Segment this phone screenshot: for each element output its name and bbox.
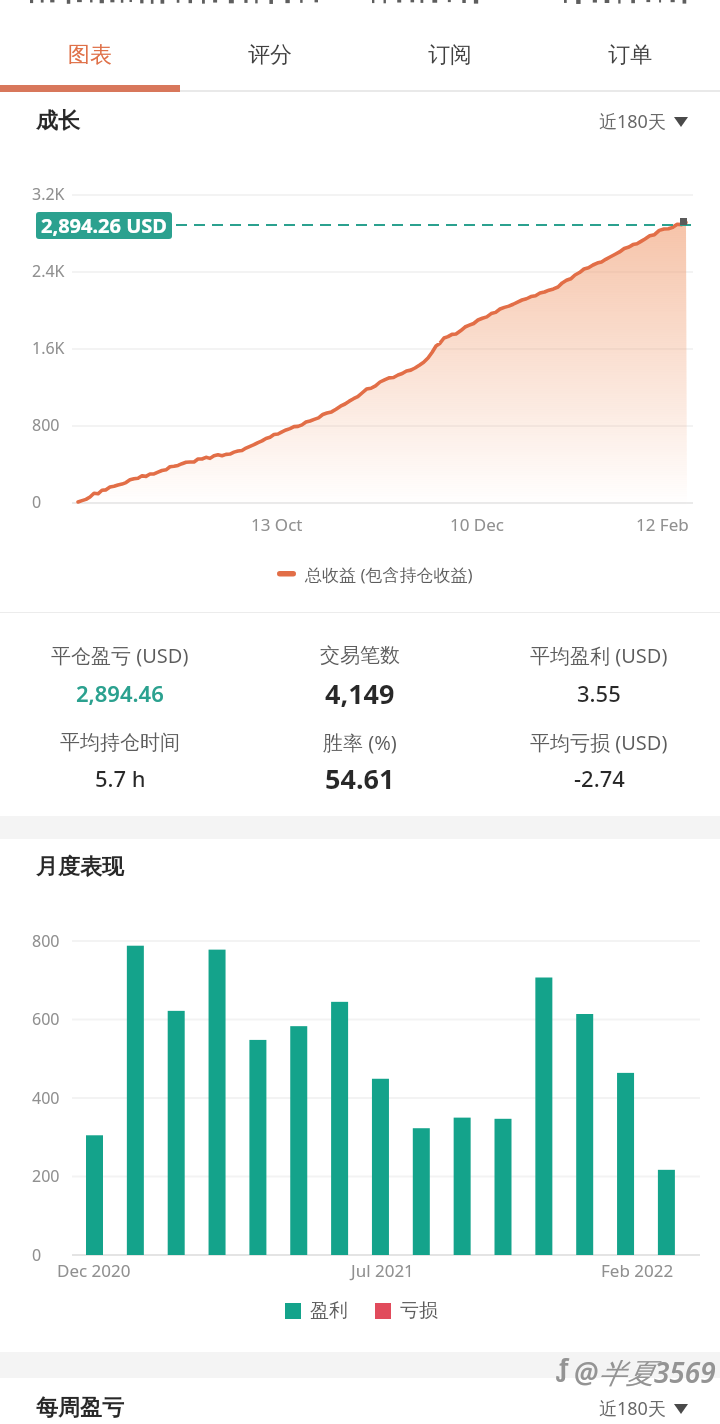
staticText: 400 [32, 1087, 60, 1109]
staticText: 0 [32, 1244, 42, 1266]
staticText: 每周盈亏 [36, 1394, 124, 1422]
staticText: 总收益 (包含持仓收益) [305, 563, 473, 586]
staticText: 4,149 [325, 675, 395, 712]
button[interactable]: 近180天 [599, 109, 720, 134]
staticText: ƒ [556, 1350, 569, 1383]
staticText: 评分 [248, 41, 292, 69]
button[interactable]: 评分 [180, 8, 360, 92]
staticText: 近180天 [599, 109, 666, 134]
staticText: 2.4K [32, 260, 65, 282]
button[interactable]: 近180天 [599, 1396, 720, 1421]
staticText: 盈利 [310, 1299, 348, 1323]
staticText: 12 Feb [636, 513, 689, 536]
staticText: 2,894.46 [76, 678, 164, 708]
staticText: 平仓盈亏 (USD) [51, 642, 189, 669]
staticText: 10 Dec [450, 513, 505, 536]
staticText: 3.55 [577, 678, 621, 708]
button[interactable]: 订单 [540, 8, 720, 92]
button[interactable]: 图表 [0, 8, 180, 92]
staticText: 近180天 [599, 1396, 666, 1421]
staticText: 0 [32, 491, 42, 513]
staticText: 600 [32, 1008, 60, 1030]
staticText: 3.2K [32, 183, 65, 205]
staticText: 订阅 [428, 41, 472, 69]
staticText: Jul 2021 [351, 1259, 414, 1282]
staticText: @半夏3569 [574, 1353, 716, 1391]
staticText: 13 Oct [251, 513, 303, 536]
staticText: 200 [32, 1165, 60, 1187]
staticText: 成长 [36, 107, 80, 135]
staticText: 800 [32, 414, 60, 436]
staticText: 平均亏损 (USD) [530, 729, 668, 756]
staticText: Feb 2022 [601, 1259, 674, 1282]
staticText: 800 [32, 930, 60, 952]
staticText: 5.7 h [95, 763, 146, 793]
staticText: 平均持仓时间 [60, 730, 180, 755]
staticText: 月度表现 [36, 853, 124, 881]
staticText: 图表 [68, 41, 112, 69]
staticText: 交易笔数 [320, 643, 400, 668]
button[interactable]: 订阅 [360, 8, 540, 92]
staticText: 1.6K [32, 337, 65, 359]
staticText: -2.74 [574, 763, 625, 793]
staticText: 54.61 [325, 760, 395, 797]
staticText: 订单 [608, 41, 652, 69]
staticText: 平均盈利 (USD) [530, 642, 668, 669]
staticText: Dec 2020 [57, 1259, 131, 1282]
staticText: 2,894.26 USD [41, 212, 167, 239]
staticText: 胜率 (%) [323, 729, 397, 756]
staticText: 亏损 [400, 1299, 438, 1323]
